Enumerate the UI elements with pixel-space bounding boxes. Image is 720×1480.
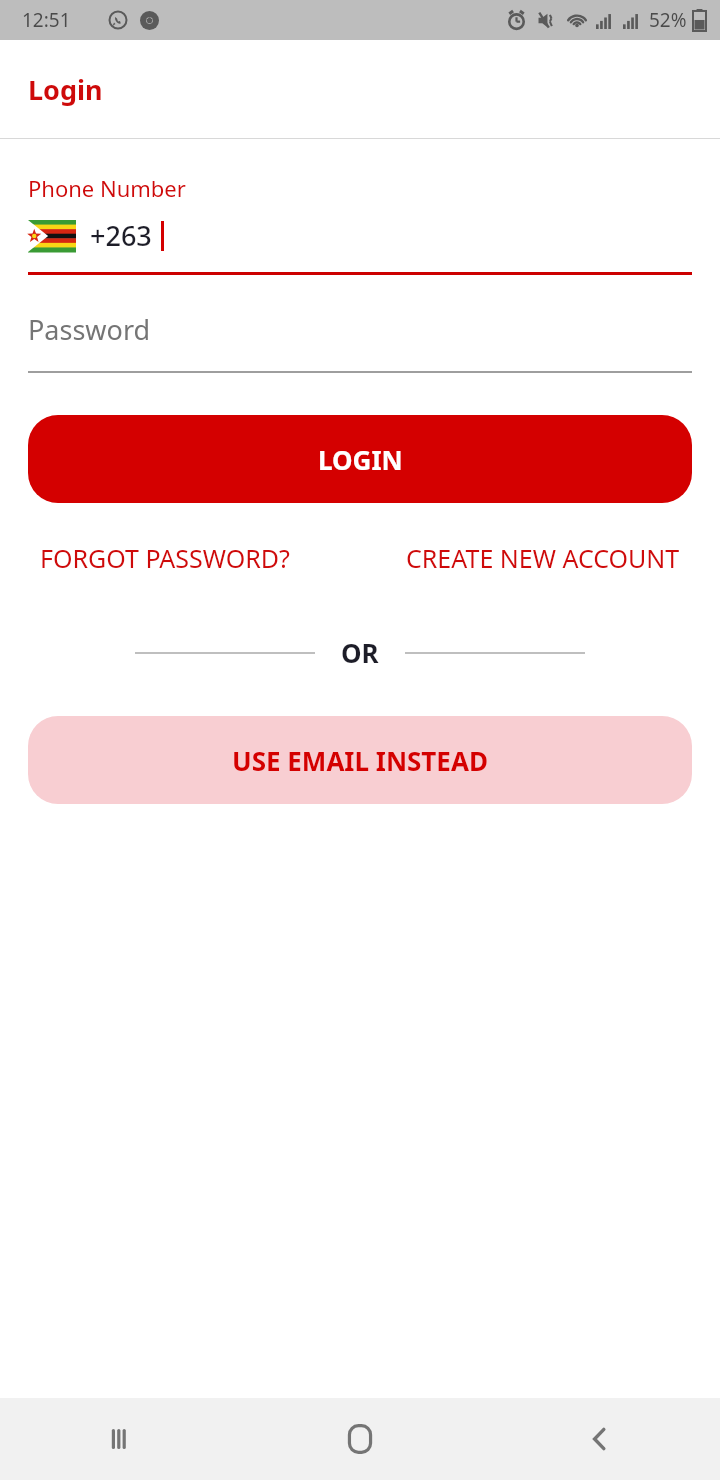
staticText: FORGOT PASSWORD? xyxy=(40,541,290,575)
button[interactable]: LOGIN xyxy=(28,415,692,503)
staticText: +263 xyxy=(90,217,152,254)
staticText: USE EMAIL INSTEAD xyxy=(232,743,488,778)
staticText: Phone Number xyxy=(28,173,186,203)
staticText: LOGIN xyxy=(318,442,403,477)
button[interactable]: CREATE NEW ACCOUNT xyxy=(394,531,692,585)
button[interactable]: Home xyxy=(240,1398,480,1480)
staticText: 52% xyxy=(649,7,687,33)
staticText: CREATE NEW ACCOUNT xyxy=(406,541,680,575)
button[interactable]: USE EMAIL INSTEAD xyxy=(28,716,692,804)
staticText: OR xyxy=(341,635,379,670)
button[interactable]: FORGOT PASSWORD? xyxy=(28,531,302,585)
button[interactable]: Password xyxy=(28,301,692,357)
staticText: Login xyxy=(28,71,103,108)
staticText: Password xyxy=(28,311,151,348)
staticText: 12:51 xyxy=(22,7,71,33)
button[interactable]: Recent apps xyxy=(0,1398,240,1480)
button[interactable]: Back xyxy=(480,1398,720,1480)
